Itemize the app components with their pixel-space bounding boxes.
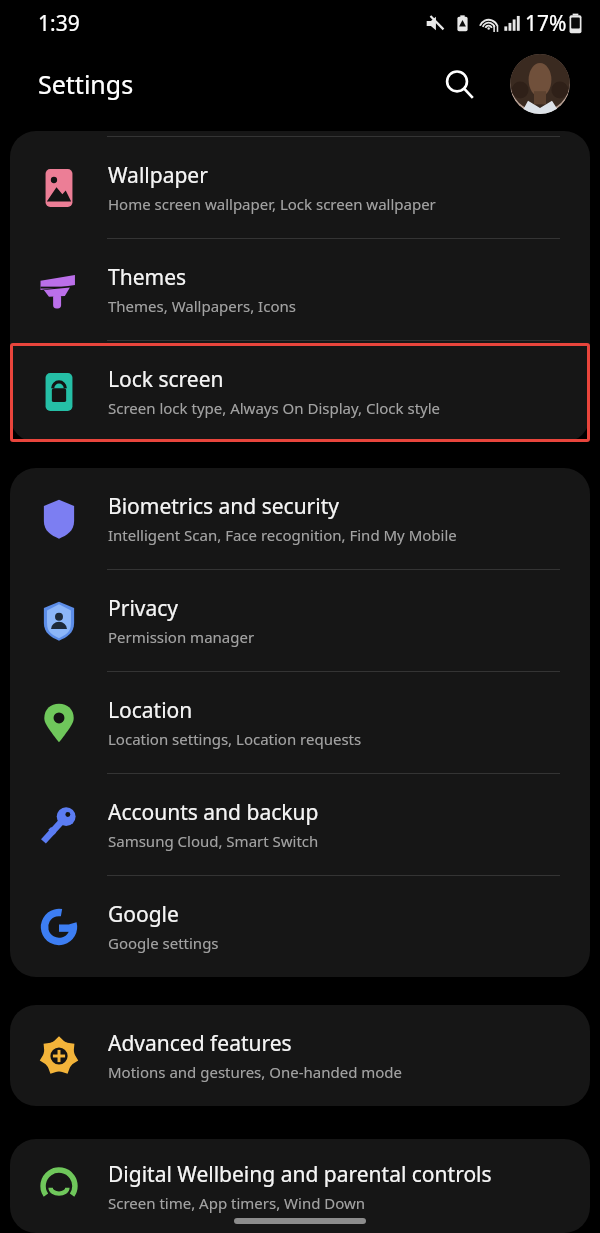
staticText: Privacy xyxy=(108,594,179,623)
staticText: Wallpaper xyxy=(108,161,208,190)
button[interactable]: Search settings xyxy=(435,60,483,108)
staticText: Samsung Cloud, Smart Switch xyxy=(108,831,319,851)
staticText: Motions and gestures, One-handed mode xyxy=(108,1062,403,1082)
staticText: 17% xyxy=(525,9,567,38)
staticText: Google settings xyxy=(108,933,219,953)
button[interactable]: Google xyxy=(10,876,590,977)
staticText: Digital Wellbeing and parental controls xyxy=(108,1160,492,1189)
staticText: 1:39 xyxy=(38,9,80,38)
staticText: Themes, Wallpapers, Icons xyxy=(108,296,296,316)
staticText: Accounts and backup xyxy=(108,798,319,827)
staticText: Permission manager xyxy=(108,627,255,647)
button[interactable]: Advanced features xyxy=(10,1005,590,1106)
staticText: Home screen wallpaper, Lock screen wallp… xyxy=(108,194,436,214)
button[interactable]: Biometrics and security xyxy=(10,468,590,569)
staticText: Themes xyxy=(108,263,187,292)
button[interactable]: Lock screen xyxy=(10,341,590,442)
staticText: Location settings, Location requests xyxy=(108,729,362,749)
button[interactable]: Accounts and backup xyxy=(10,774,590,875)
staticText: Screen time, App timers, Wind Down xyxy=(108,1193,366,1213)
staticText: Advanced features xyxy=(108,1029,292,1058)
staticText: Screen lock type, Always On Display, Clo… xyxy=(108,398,441,418)
button[interactable]: Location xyxy=(10,672,590,773)
staticText: Google xyxy=(108,900,179,929)
staticText: Settings xyxy=(38,67,134,101)
staticText: Location xyxy=(108,696,193,725)
button[interactable]: Wallpaper xyxy=(10,137,590,238)
button[interactable]: Privacy xyxy=(10,570,590,671)
button[interactable]: Samsung account profile xyxy=(510,54,570,114)
staticText: Intelligent Scan, Face recognition, Find… xyxy=(108,525,457,545)
staticText: Biometrics and security xyxy=(108,492,339,521)
button[interactable]: Themes xyxy=(10,239,590,340)
staticText: Lock screen xyxy=(108,365,224,394)
button[interactable]: Digital Wellbeing and parental controls xyxy=(10,1139,590,1233)
